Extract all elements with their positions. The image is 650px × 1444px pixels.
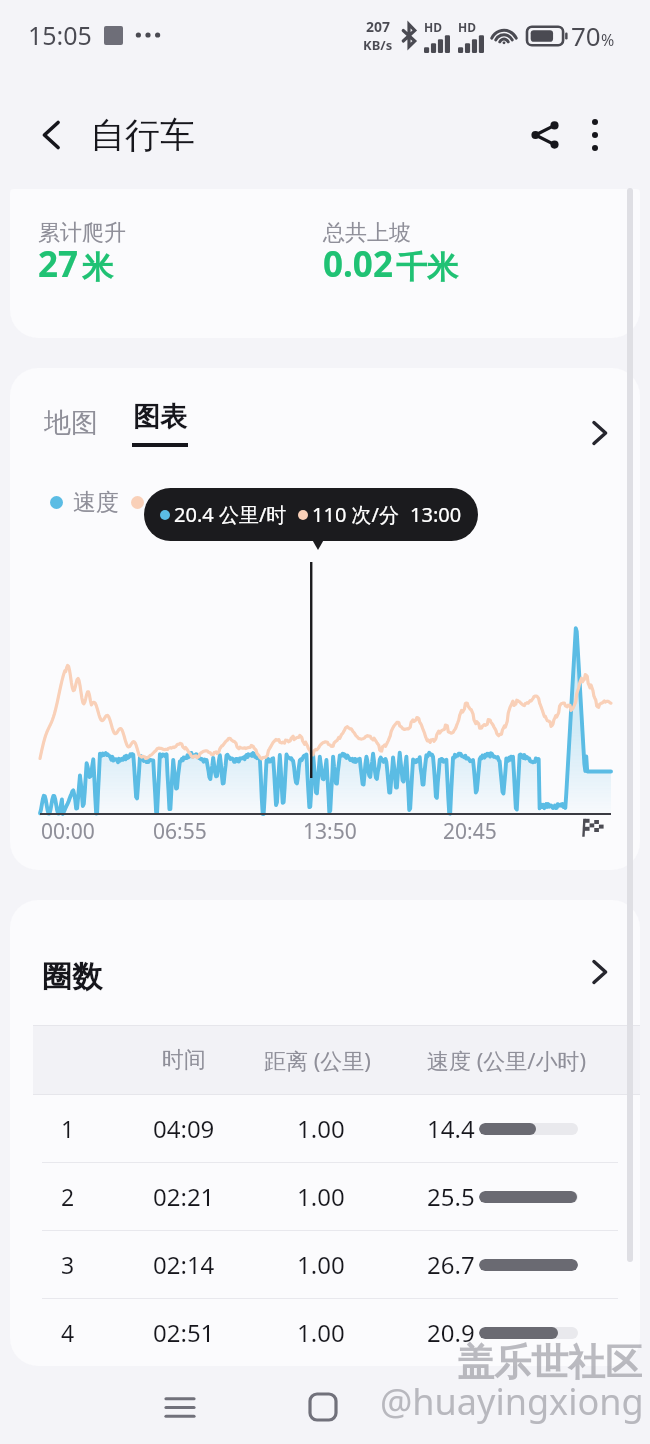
staticText: HD bbox=[424, 19, 442, 35]
button[interactable]: More options bbox=[564, 104, 626, 166]
button[interactable]: 地图 bbox=[40, 402, 102, 444]
staticText: 02:21 bbox=[153, 1180, 215, 1213]
staticText: 速度 bbox=[73, 488, 119, 517]
staticText: 06:55 bbox=[153, 817, 207, 846]
button[interactable]: Back bbox=[22, 105, 82, 165]
staticText: 自行车 bbox=[90, 113, 195, 157]
staticText: 总共上坡 bbox=[323, 219, 411, 247]
staticText: 3 bbox=[61, 1249, 75, 1280]
button[interactable]: 4 bbox=[10, 1299, 640, 1366]
staticText: 02:51 bbox=[153, 1316, 215, 1349]
staticText: 累计爬升 bbox=[38, 219, 126, 247]
staticText: 26.7 bbox=[427, 1248, 475, 1281]
button[interactable]: 圈数 bbox=[42, 900, 618, 1025]
staticText: 千米 bbox=[396, 248, 458, 287]
staticText: 1 bbox=[61, 1113, 75, 1144]
staticText: 米 bbox=[82, 248, 113, 287]
button[interactable]: 2 bbox=[10, 1163, 640, 1230]
staticText: % bbox=[601, 29, 615, 51]
staticText: 1.00 bbox=[297, 1248, 345, 1281]
staticText: 2 bbox=[61, 1181, 75, 1212]
button[interactable]: 1 bbox=[10, 1095, 640, 1162]
button[interactable]: Home bbox=[279, 1370, 367, 1444]
staticText: 110 次/分 bbox=[312, 501, 399, 528]
button[interactable]: Back bbox=[426, 1370, 514, 1444]
staticText: 4 bbox=[61, 1317, 75, 1348]
staticText: KB/s bbox=[363, 36, 393, 54]
button[interactable]: Open chart bbox=[574, 401, 618, 445]
staticText: 1.00 bbox=[297, 1316, 345, 1349]
staticText: 1.00 bbox=[297, 1112, 345, 1145]
button[interactable]: Recent apps bbox=[136, 1370, 224, 1444]
staticText: 盖乐世社区 bbox=[457, 1339, 642, 1386]
staticText: HD bbox=[458, 19, 476, 35]
staticText: 207 bbox=[366, 17, 391, 36]
staticText: 70 bbox=[571, 18, 601, 53]
staticText: 地图 bbox=[44, 406, 98, 440]
staticText: @huayingxiong bbox=[380, 1377, 644, 1426]
staticText: 13:50 bbox=[303, 817, 357, 846]
staticText: 14.4 bbox=[427, 1112, 475, 1145]
staticText: 20.9 bbox=[427, 1316, 475, 1349]
staticText: 25.5 bbox=[427, 1180, 475, 1213]
staticText: 圈数 bbox=[42, 958, 102, 996]
staticText: 13:00 bbox=[410, 501, 462, 528]
staticText: 20:45 bbox=[443, 817, 497, 846]
staticText: 27 bbox=[38, 240, 79, 288]
button[interactable]: Share bbox=[514, 104, 576, 166]
staticText: 00:00 bbox=[41, 817, 95, 846]
staticText: 速度 (公里/小时) bbox=[427, 1045, 587, 1075]
staticText: 距离 (公里) bbox=[264, 1045, 371, 1075]
staticText: 0.02 bbox=[323, 240, 393, 288]
staticText: 图表 bbox=[133, 400, 187, 434]
button[interactable]: 3 bbox=[10, 1231, 640, 1298]
button[interactable]: 图表 bbox=[128, 396, 192, 451]
staticText: 04:09 bbox=[153, 1112, 215, 1145]
staticText: 02:14 bbox=[153, 1248, 215, 1281]
staticText: 15:05 bbox=[28, 18, 92, 52]
button[interactable]: 累计爬升 bbox=[10, 189, 640, 338]
staticText: 1.00 bbox=[297, 1180, 345, 1213]
staticText: 20.4 公里/时 bbox=[174, 501, 287, 528]
staticText: 时间 bbox=[162, 1046, 206, 1074]
